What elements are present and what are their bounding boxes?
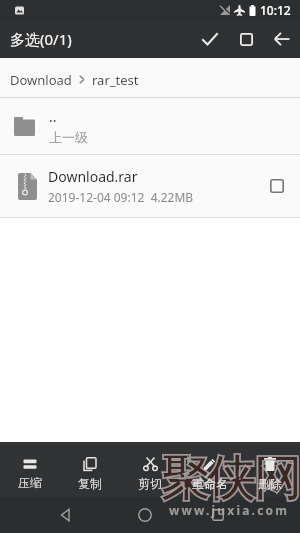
button[interactable] <box>192 20 228 58</box>
button[interactable] <box>264 20 300 58</box>
button[interactable]: 删除 <box>240 442 300 497</box>
staticText: rar_test <box>92 71 139 89</box>
button[interactable]: 复制 <box>60 442 120 497</box>
staticText: 聚侠网 <box>162 449 300 509</box>
staticText: .. <box>49 107 57 126</box>
button[interactable] <box>188 497 248 533</box>
button[interactable] <box>262 171 292 201</box>
button[interactable]: 删除 <box>240 442 300 497</box>
staticText: 上一级 <box>49 129 88 145</box>
button[interactable]: 重命名 <box>180 442 240 497</box>
button[interactable]: 剪切 <box>120 442 180 497</box>
staticText: 重命名 <box>192 476 228 491</box>
button[interactable]: 重命名 <box>180 442 240 497</box>
staticText: 2019-12-04 09:12 4.22MB <box>48 189 194 205</box>
button[interactable]: 压缩 <box>0 442 60 497</box>
staticText: Download <box>10 71 72 89</box>
staticText: Download.rar <box>48 167 138 186</box>
staticText: 聚侠网 <box>162 449 300 509</box>
staticText: 压缩 <box>18 475 42 490</box>
button[interactable]: Download.rar <box>0 155 300 217</box>
staticText: 多选(0/1) <box>10 29 72 49</box>
button[interactable] <box>115 497 175 533</box>
staticText: 重命名 <box>192 476 228 491</box>
staticText: 删除 <box>258 476 282 491</box>
staticText: 删除 <box>258 476 282 491</box>
staticText: www.juxia.com <box>169 502 290 518</box>
staticText: 剪切 <box>138 476 162 491</box>
staticText: 复制 <box>78 476 102 491</box>
staticText: 10:12 <box>260 2 291 18</box>
button[interactable]: Download <box>0 58 300 97</box>
button[interactable]: .. <box>0 98 300 154</box>
button[interactable] <box>35 497 95 533</box>
button[interactable] <box>228 20 264 58</box>
